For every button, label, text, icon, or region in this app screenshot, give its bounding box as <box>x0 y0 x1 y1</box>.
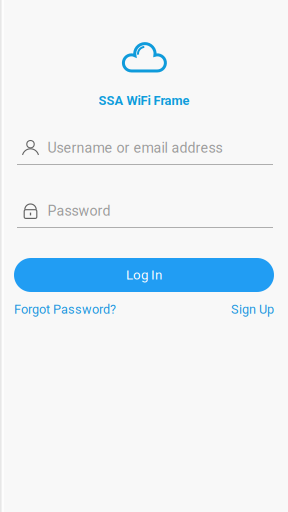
button[interactable]: Password <box>14 201 274 228</box>
button[interactable]: Username or email address <box>14 138 274 165</box>
staticText: Password <box>47 203 110 219</box>
button[interactable]: Forgot Password? <box>14 302 116 317</box>
staticText: Log In <box>126 267 162 283</box>
button[interactable]: Log In <box>14 258 274 292</box>
staticText: Forgot Password? <box>14 302 116 317</box>
staticText: Username or email address <box>47 140 222 156</box>
button[interactable]: Sign Up <box>231 302 274 317</box>
staticText: Sign Up <box>231 302 274 317</box>
staticText: SSA WiFi Frame <box>98 93 189 108</box>
